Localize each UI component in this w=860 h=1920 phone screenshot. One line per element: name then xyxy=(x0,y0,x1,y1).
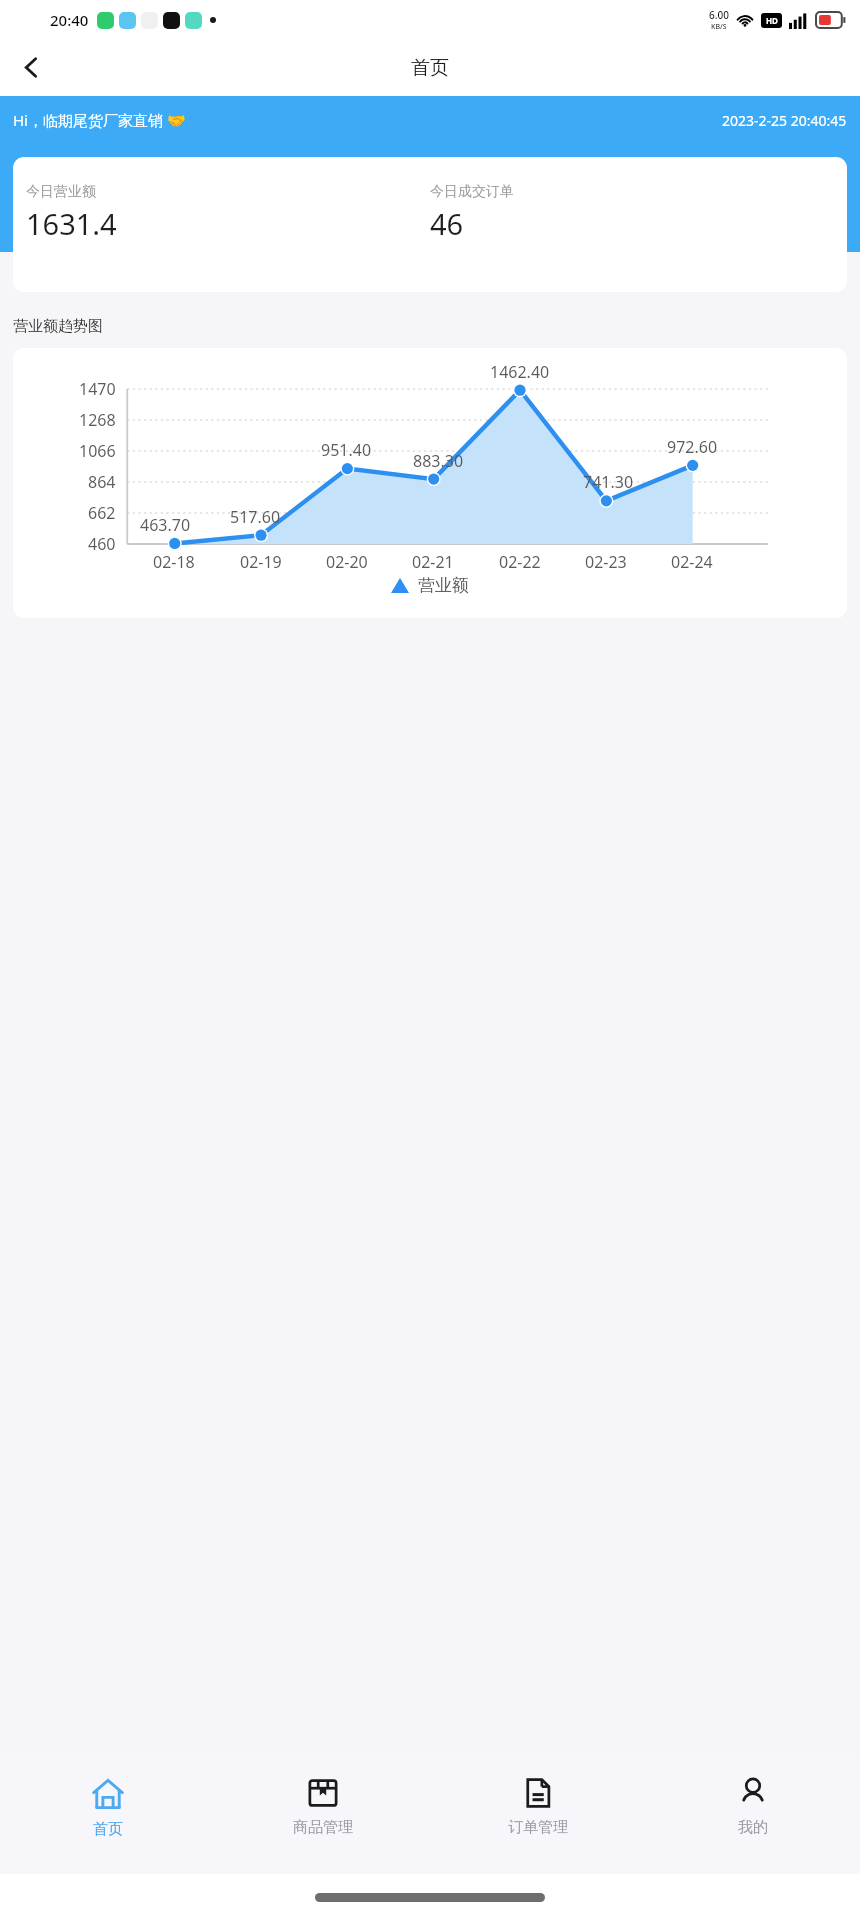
staticText: 864 xyxy=(88,471,116,493)
staticText: 02-24 xyxy=(671,551,713,573)
staticText: 662 xyxy=(88,502,116,524)
staticText: 02-23 xyxy=(585,551,627,573)
button[interactable]: Back xyxy=(0,39,62,96)
staticText: 20:40 xyxy=(50,10,89,30)
staticText: HD xyxy=(766,15,778,26)
staticText: 1470 xyxy=(79,378,116,400)
staticText: 营业额趋势图 xyxy=(13,317,103,336)
staticText: 首页 xyxy=(411,56,449,80)
staticText: 6.00 xyxy=(709,8,729,22)
staticText: 1462.40 xyxy=(490,361,550,383)
staticText: 营业额 xyxy=(418,575,469,596)
button[interactable]: 今日营业额 xyxy=(13,157,847,292)
staticText: 商品管理 xyxy=(293,1818,353,1837)
staticText: 02-20 xyxy=(326,551,368,573)
staticText: 972.60 xyxy=(667,436,718,458)
staticText: 1066 xyxy=(79,440,116,462)
staticText: 02-18 xyxy=(153,551,195,573)
staticText: 我的 xyxy=(738,1818,768,1837)
staticText: 460 xyxy=(88,533,116,555)
staticText: 517.60 xyxy=(230,506,281,528)
button[interactable]: 1470 xyxy=(13,348,847,618)
staticText: 741.30 xyxy=(583,471,634,493)
staticText: 首页 xyxy=(93,1820,123,1839)
staticText: 今日营业额 xyxy=(26,183,96,201)
staticText: 02-21 xyxy=(412,551,454,573)
staticText: 02-22 xyxy=(499,551,541,573)
button[interactable]: 商品管理 xyxy=(215,1759,430,1874)
staticText: KB/S xyxy=(711,22,727,32)
staticText: 951.40 xyxy=(321,439,372,461)
button[interactable]: 订单管理 xyxy=(430,1759,645,1874)
staticText: 02-19 xyxy=(240,551,282,573)
staticText: 463.70 xyxy=(140,514,191,536)
staticText: 订单管理 xyxy=(508,1818,568,1837)
staticText: Hi，临期尾货厂家直销 🤝 xyxy=(13,110,186,130)
staticText: 今日成交订单 xyxy=(430,183,514,201)
staticText: 46 xyxy=(430,204,464,243)
staticText: 1268 xyxy=(79,409,116,431)
staticText: 2023-2-25 20:40:45 xyxy=(722,111,847,130)
button[interactable]: 我的 xyxy=(645,1759,860,1874)
button[interactable]: 首页 xyxy=(0,1759,215,1874)
staticText: 883.30 xyxy=(413,450,464,472)
staticText: 1631.4 xyxy=(26,204,117,243)
